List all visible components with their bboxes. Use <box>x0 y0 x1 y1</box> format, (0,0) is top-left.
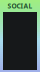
staticText: SOCIAL <box>7 2 32 10</box>
